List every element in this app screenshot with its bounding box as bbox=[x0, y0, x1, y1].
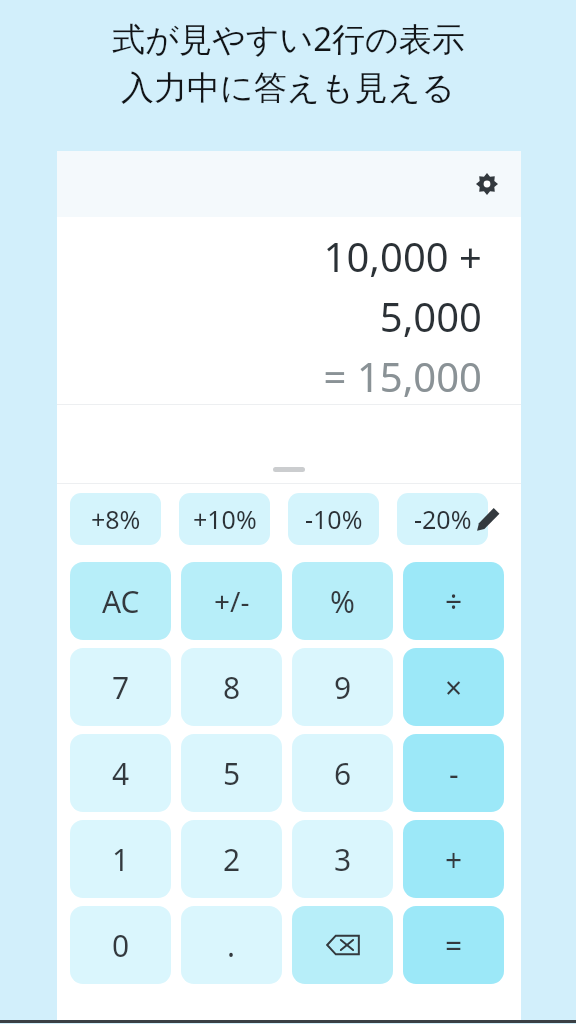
button[interactable]: Backspace bbox=[292, 906, 393, 984]
button[interactable]: +/- bbox=[181, 562, 282, 640]
staticText: 9 bbox=[334, 667, 352, 708]
staticText: 7 bbox=[112, 667, 130, 708]
staticText: 10,000 + bbox=[323, 229, 482, 283]
button[interactable]: 2 bbox=[181, 820, 282, 898]
button[interactable]: 1 bbox=[70, 820, 171, 898]
staticText: -20% bbox=[414, 502, 472, 536]
button[interactable]: . bbox=[181, 906, 282, 984]
button[interactable]: 0 bbox=[70, 906, 171, 984]
staticText: 0 bbox=[112, 925, 130, 966]
button[interactable]: % bbox=[292, 562, 393, 640]
button[interactable]: 9 bbox=[292, 648, 393, 726]
staticText: 8 bbox=[223, 667, 241, 708]
button[interactable]: × bbox=[403, 648, 504, 726]
button[interactable]: AC bbox=[70, 562, 171, 640]
button[interactable]: 6 bbox=[292, 734, 393, 812]
staticText: - bbox=[449, 753, 459, 794]
button[interactable]: -10% bbox=[288, 493, 379, 545]
staticText: -10% bbox=[305, 502, 363, 536]
button[interactable]: 5 bbox=[181, 734, 282, 812]
staticText: = bbox=[445, 925, 463, 966]
staticText: +10% bbox=[193, 502, 257, 536]
staticText: % bbox=[330, 581, 355, 622]
button[interactable]: = bbox=[403, 906, 504, 984]
staticText: . bbox=[227, 925, 236, 966]
button[interactable]: ÷ bbox=[403, 562, 504, 640]
button[interactable]: 8 bbox=[181, 648, 282, 726]
staticText: AC bbox=[102, 581, 140, 622]
staticText: 式が見やすい2行の表示 bbox=[112, 16, 465, 61]
button[interactable]: 7 bbox=[70, 648, 171, 726]
staticText: 2 bbox=[223, 839, 241, 880]
staticText: 3 bbox=[334, 839, 352, 880]
staticText: 入力中に答えも見える bbox=[121, 67, 455, 109]
staticText: = 15,000 bbox=[323, 349, 482, 403]
staticText: × bbox=[445, 667, 463, 708]
staticText: +/- bbox=[214, 582, 250, 620]
staticText: + bbox=[445, 839, 463, 880]
staticText: ÷ bbox=[445, 581, 463, 622]
staticText: +8% bbox=[91, 502, 141, 536]
button[interactable]: 4 bbox=[70, 734, 171, 812]
button[interactable]: + bbox=[403, 820, 504, 898]
staticText: 4 bbox=[112, 753, 130, 794]
button[interactable]: +8% bbox=[70, 493, 161, 545]
button[interactable]: Settings bbox=[467, 164, 507, 204]
staticText: 1 bbox=[112, 839, 130, 880]
button[interactable]: - bbox=[403, 734, 504, 812]
button[interactable]: 3 bbox=[292, 820, 393, 898]
button[interactable]: Edit shortcuts bbox=[467, 498, 509, 540]
staticText: 6 bbox=[334, 753, 352, 794]
staticText: 5,000 bbox=[379, 289, 482, 343]
staticText: 5 bbox=[223, 753, 241, 794]
button[interactable]: +10% bbox=[179, 493, 270, 545]
button[interactable]: -20% bbox=[397, 493, 488, 545]
